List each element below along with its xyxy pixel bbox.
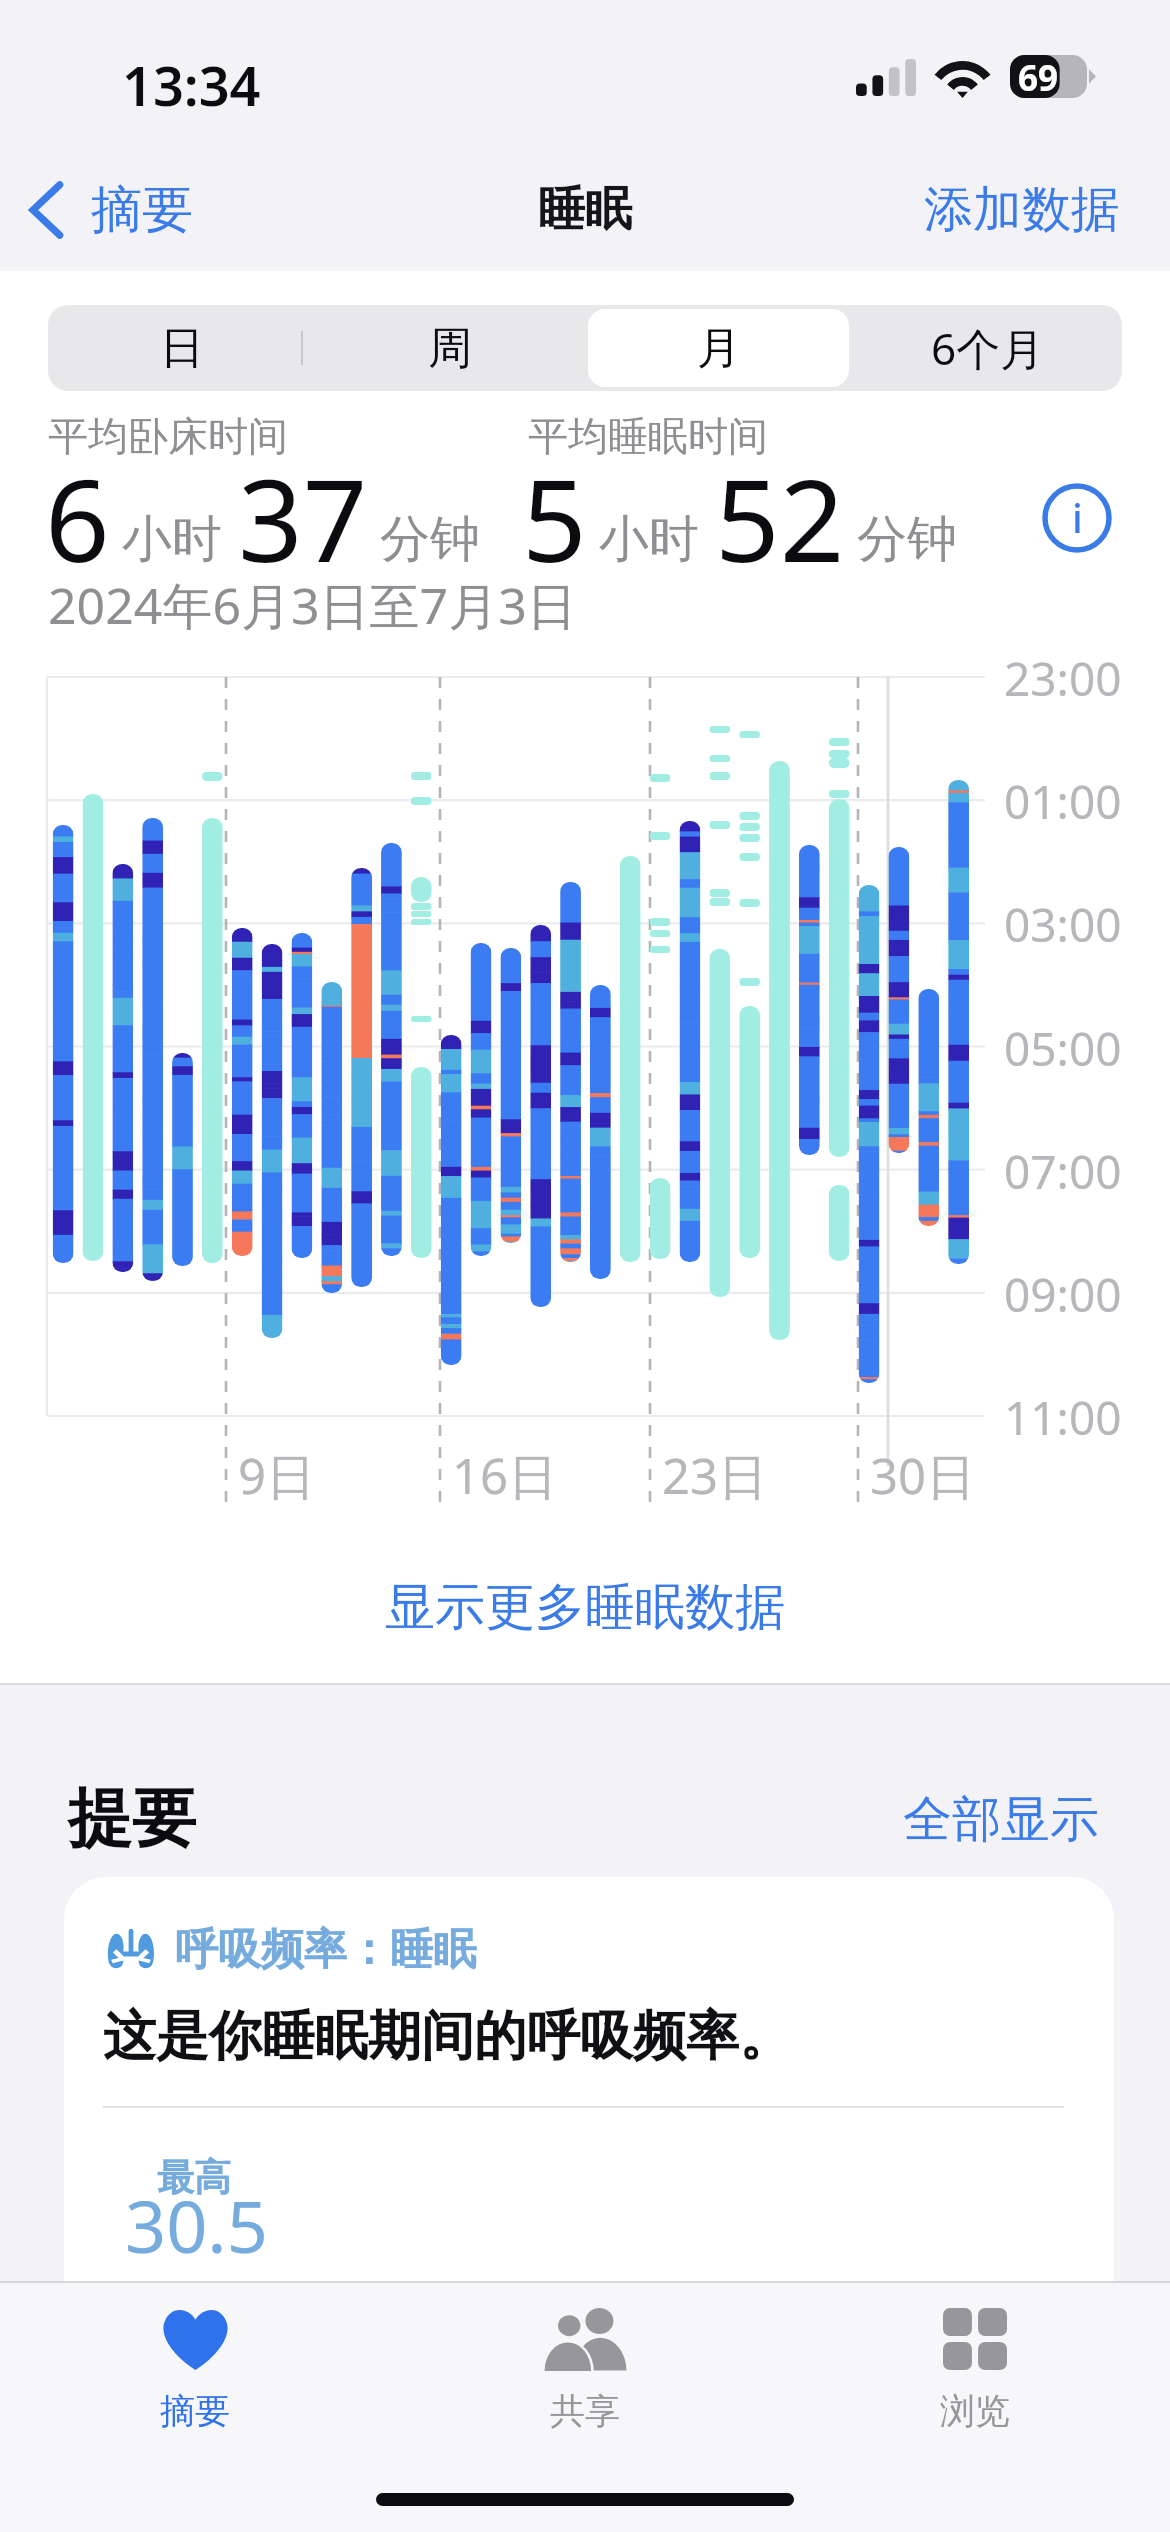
button[interactable]: 添加数据 xyxy=(920,169,1124,251)
staticText: 小时 xyxy=(599,508,699,571)
staticText: i xyxy=(1072,490,1083,544)
button[interactable]: 6个月 xyxy=(857,309,1118,387)
staticText: 摘要 xyxy=(91,178,193,242)
staticText: 共享 xyxy=(550,2389,620,2433)
staticText: 月 xyxy=(697,321,741,376)
staticText: 30.5 xyxy=(125,2176,268,2274)
staticText: 52 xyxy=(715,441,845,595)
staticText: 小时 xyxy=(122,508,222,571)
staticText: 07:00 xyxy=(1004,1140,1122,1203)
staticText: 37 xyxy=(238,441,368,595)
staticText: 5 xyxy=(522,441,587,595)
button[interactable]: 摘要 xyxy=(22,168,199,252)
button[interactable]: 周 xyxy=(320,309,580,387)
button[interactable]: 显示更多睡眠数据 xyxy=(0,1566,1170,1629)
staticText: 呼吸频率：睡眠 xyxy=(175,1923,476,1977)
staticText: 03:00 xyxy=(1004,893,1122,956)
staticText: 09:00 xyxy=(1004,1263,1122,1326)
button[interactable]: 共享 xyxy=(390,2281,780,2433)
staticText: 13:34 xyxy=(122,48,261,122)
staticText: 01:00 xyxy=(1004,770,1122,833)
staticText: 2024年6月3日至7月3日 xyxy=(48,571,577,639)
staticText: 这是你睡眠期间的呼吸频率。 xyxy=(103,2003,792,2070)
staticText: 平均卧床时间 xyxy=(48,411,288,461)
staticText: 分钟 xyxy=(857,508,957,571)
button[interactable]: 浏览 xyxy=(780,2281,1170,2433)
staticText: 平均睡眠时间 xyxy=(528,411,768,461)
staticText: 23日 xyxy=(662,1442,768,1509)
staticText: 11:00 xyxy=(1004,1386,1122,1449)
button[interactable]: 全部显示 xyxy=(903,1789,1099,1851)
staticText: 6个月 xyxy=(931,318,1045,378)
button[interactable]: 日 xyxy=(52,309,312,387)
staticText: 69 xyxy=(1018,54,1059,97)
staticText: 浏览 xyxy=(940,2389,1010,2433)
staticText: 9日 xyxy=(238,1442,316,1509)
staticText: 摘要 xyxy=(160,2389,230,2433)
staticText: 睡眠 xyxy=(538,180,632,239)
staticText: 分钟 xyxy=(380,508,480,571)
button[interactable]: 信息 xyxy=(1042,483,1112,553)
staticText: 6 xyxy=(45,441,110,595)
staticText: 05:00 xyxy=(1004,1017,1122,1080)
button[interactable]: 月 xyxy=(588,309,849,387)
staticText: 16日 xyxy=(452,1442,558,1509)
button[interactable]: 摘要 xyxy=(0,2281,390,2433)
staticText: 23:00 xyxy=(1004,647,1122,710)
staticText: 30日 xyxy=(870,1442,976,1509)
staticText: 周 xyxy=(428,321,472,376)
staticText: 最高 xyxy=(157,2154,231,2201)
staticText: 提要 xyxy=(68,1778,196,1859)
staticText: 日 xyxy=(160,321,204,376)
button[interactable]: 呼吸频率：睡眠 xyxy=(64,1877,1114,2281)
